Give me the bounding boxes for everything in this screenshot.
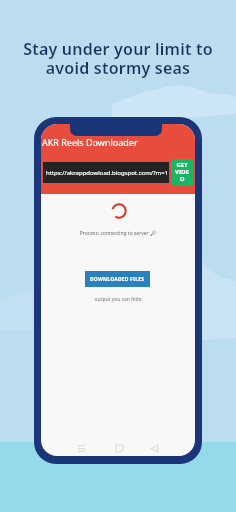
staticText: AKR Reels Downloader	[42, 136, 138, 148]
staticText: https://akrappdowload.blogspot.com/?m=1	[46, 169, 169, 177]
button[interactable]: GET VIDE O	[171, 159, 193, 185]
staticText: GET VIDE O	[175, 161, 189, 183]
staticText: DOWNLOADED FILES	[90, 276, 145, 283]
button[interactable]: Recent apps	[74, 441, 88, 455]
staticText: Process: connecting to server 🔎	[41, 230, 195, 237]
button[interactable]: https://akrappdowload.blogspot.com/?m=1	[43, 162, 169, 183]
staticText: Stay under your limit to avoid stormy se…	[0, 38, 236, 79]
button[interactable]: Home	[112, 441, 126, 455]
button[interactable]: DOWNLOADED FILES	[85, 271, 150, 287]
staticText: output you can hide	[41, 296, 195, 303]
button[interactable]: Back	[147, 441, 161, 455]
